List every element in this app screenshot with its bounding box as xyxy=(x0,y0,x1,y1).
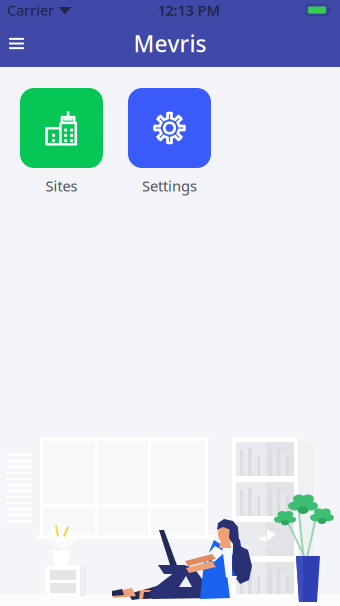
staticText: Mevris xyxy=(133,28,206,58)
staticText: Settings xyxy=(142,176,197,195)
button[interactable]: Settings xyxy=(128,88,211,195)
staticText: 12:13 PM xyxy=(157,0,220,20)
button[interactable]: Menu xyxy=(0,20,33,66)
staticText: Carrier xyxy=(7,0,54,20)
staticText: Sites xyxy=(45,176,77,195)
button[interactable]: Sites xyxy=(20,88,103,195)
